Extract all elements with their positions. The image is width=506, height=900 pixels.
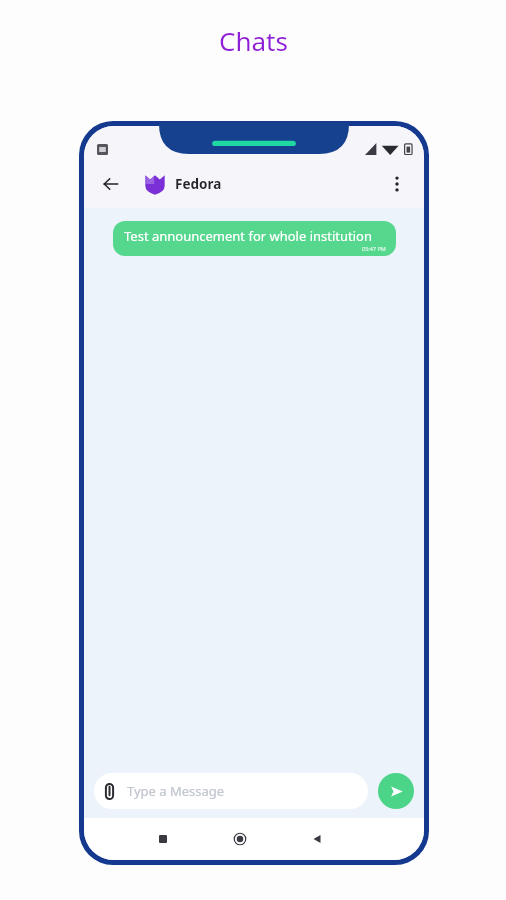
staticText: Test announcement for whole institution	[124, 227, 373, 245]
staticText: Chats	[219, 23, 288, 58]
button[interactable]: Test announcement for whole institution	[113, 221, 396, 256]
button[interactable]: Back	[303, 825, 331, 853]
staticText: 05:47 PM	[362, 245, 386, 252]
staticText: Fedora	[175, 175, 222, 193]
button[interactable]: Back	[96, 169, 126, 199]
other: Attach file	[105, 783, 114, 800]
button[interactable]: More options	[384, 171, 410, 197]
button[interactable]: Send	[378, 773, 414, 809]
button[interactable]: Attach file	[94, 773, 368, 809]
button[interactable]: Home	[226, 825, 254, 853]
staticText: Type a Message	[127, 782, 225, 800]
button[interactable]: Recents	[149, 825, 177, 853]
button[interactable]: Fedora	[144, 173, 222, 195]
